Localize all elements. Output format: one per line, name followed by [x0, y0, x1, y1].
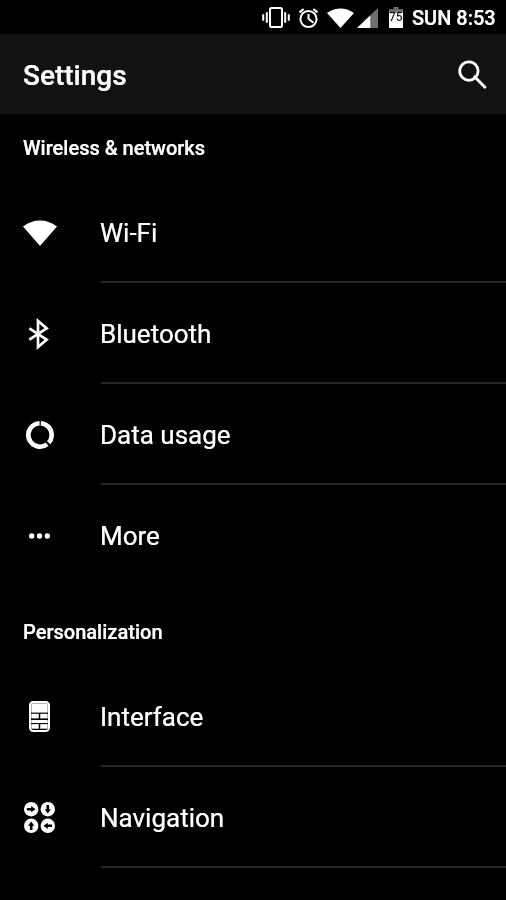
button[interactable]: Data usage [0, 384, 506, 485]
button[interactable]: Interface [0, 666, 506, 767]
staticText: Navigation [100, 803, 225, 833]
staticText: Settings [23, 59, 127, 92]
staticText: Wireless & networks [23, 136, 206, 159]
button[interactable]: Bluetooth [0, 283, 506, 384]
staticText: SUN 8:53 [412, 6, 496, 29]
staticText: Wi-Fi [100, 218, 158, 248]
staticText: More [100, 521, 160, 551]
button[interactable]: Navigation [0, 767, 506, 868]
staticText: Interface [100, 702, 204, 732]
staticText: Personalization [23, 620, 163, 643]
button[interactable]: More [0, 485, 506, 586]
staticText: 75 [389, 10, 403, 24]
button[interactable]: Wi-Fi [0, 182, 506, 283]
staticText: Data usage [100, 420, 231, 450]
staticText: Bluetooth [100, 319, 212, 349]
button[interactable]: Search [430, 34, 506, 114]
